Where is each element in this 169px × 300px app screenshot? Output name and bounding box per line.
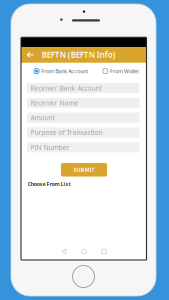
button[interactable]: Choose From List (27, 179, 70, 189)
button[interactable]: Amount (27, 113, 139, 123)
button[interactable]: Purpose of Transaction (27, 127, 139, 138)
button[interactable]: SUBMIT (61, 163, 107, 176)
staticText: Receiver Bank Account (31, 84, 102, 93)
button[interactable]: Back (56, 246, 72, 257)
staticText: Amount (31, 113, 55, 122)
button[interactable]: Receiver Bank Account (27, 83, 139, 93)
staticText: PIN Number (31, 143, 70, 152)
staticText: Receiver Name (31, 98, 79, 107)
button[interactable]: Home (76, 246, 92, 257)
button[interactable]: Back (22, 47, 39, 63)
staticText: From Wallet (110, 68, 139, 75)
button[interactable]: Receiver Name (27, 98, 139, 108)
button[interactable]: From Bank Account (34, 67, 98, 76)
staticText: Purpose of Transaction (31, 128, 103, 137)
staticText: SUBMIT (73, 166, 94, 173)
button[interactable]: PIN Number (27, 142, 139, 152)
button[interactable]: From Wallet (103, 67, 143, 76)
button[interactable]: Recent apps (96, 246, 112, 257)
staticText: From Bank Account (41, 68, 88, 75)
staticText: Choose From List (27, 180, 70, 187)
staticText: BEFTN (BEFTN Info) (42, 49, 116, 60)
